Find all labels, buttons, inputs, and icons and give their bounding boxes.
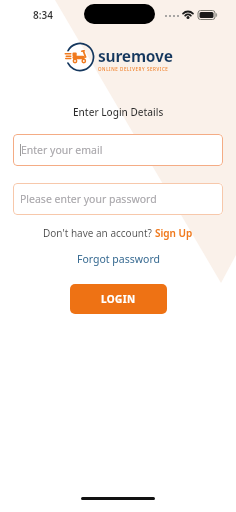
button[interactable]: Sign Up	[155, 226, 193, 240]
staticText: Enter Login Details	[73, 105, 164, 119]
staticText: Don't have an account?	[43, 226, 155, 240]
staticText: Please enter your password	[20, 192, 157, 206]
button[interactable]: Please enter your password	[13, 183, 223, 215]
button[interactable]: Enter your email	[13, 134, 223, 166]
staticText: ONLINE DELIVERY SERVICE	[98, 66, 169, 72]
button[interactable]: LOGIN	[70, 284, 167, 314]
staticText: LOGIN	[101, 292, 136, 306]
staticText: Sign Up	[155, 226, 193, 240]
staticText: suremove	[98, 45, 173, 66]
staticText: 8:34	[33, 8, 53, 22]
button[interactable]: Forgot password	[77, 252, 160, 266]
staticText: Enter your email	[21, 143, 103, 157]
staticText: Forgot password	[77, 252, 160, 266]
